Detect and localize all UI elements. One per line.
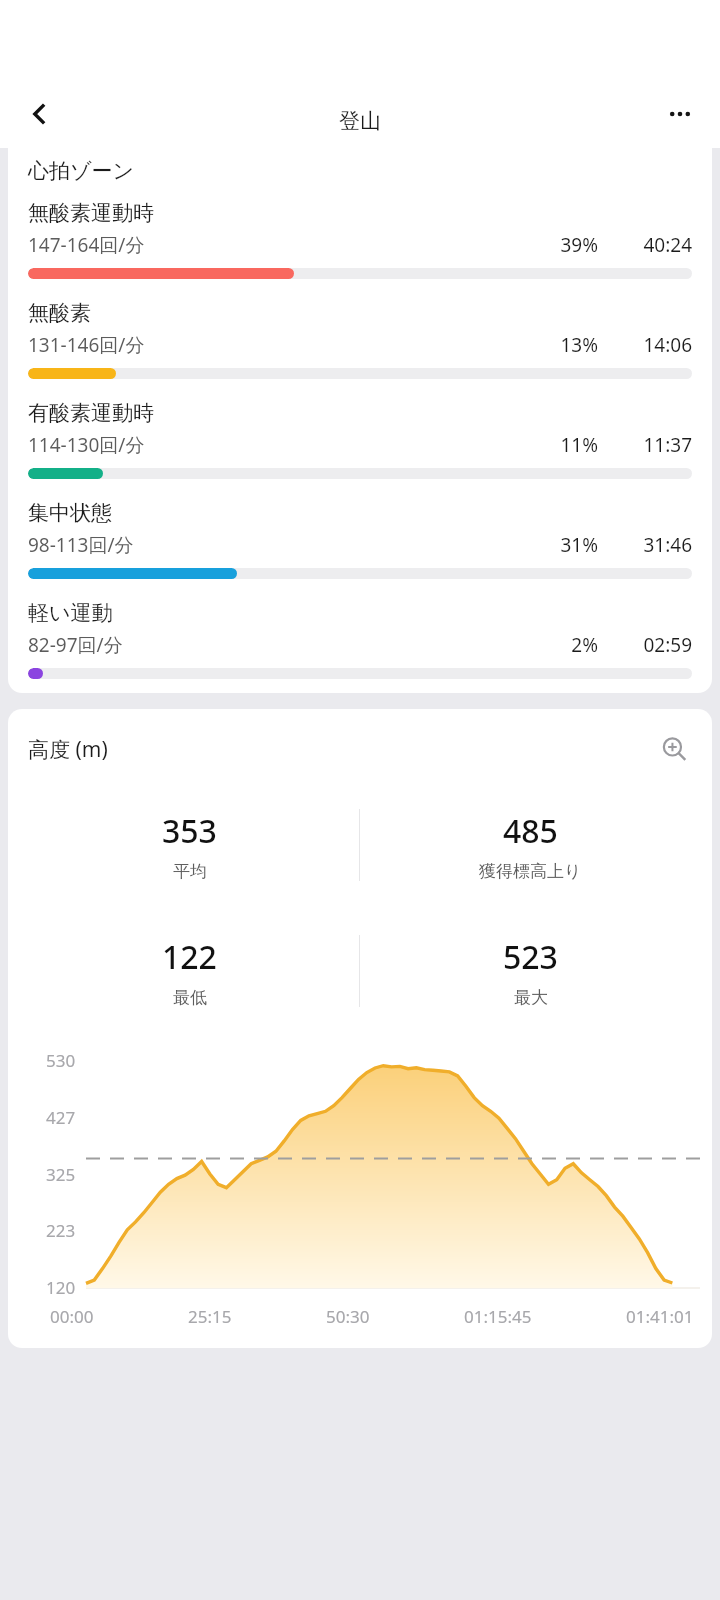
button[interactable]: 集中状態 bbox=[20, 500, 700, 579]
staticText: 25:15 bbox=[188, 1305, 232, 1328]
staticText: 2% bbox=[528, 632, 598, 658]
staticText: 122 bbox=[162, 935, 217, 979]
staticText: 120 bbox=[46, 1276, 76, 1299]
staticText: 02:59 bbox=[612, 632, 692, 658]
staticText: 獲得標高上り bbox=[479, 861, 582, 882]
staticText: 11:37 bbox=[612, 432, 692, 458]
button[interactable]: More options bbox=[654, 88, 706, 140]
staticText: 50:30 bbox=[326, 1305, 370, 1328]
staticText: 14:06 bbox=[612, 332, 692, 358]
staticText: 530 bbox=[46, 1049, 76, 1072]
staticText: 31:46 bbox=[612, 532, 692, 558]
staticText: 00:00 bbox=[50, 1305, 94, 1328]
staticText: 登山 bbox=[339, 108, 381, 134]
staticText: 98-113回/分 bbox=[28, 532, 134, 558]
button[interactable]: 無酸素 bbox=[20, 300, 700, 379]
staticText: 無酸素 bbox=[28, 300, 91, 326]
staticText: 軽い運動 bbox=[28, 600, 113, 626]
staticText: 82-97回/分 bbox=[28, 632, 123, 658]
staticText: 353 bbox=[162, 809, 217, 853]
staticText: 427 bbox=[46, 1106, 76, 1129]
staticText: 最低 bbox=[173, 987, 207, 1008]
staticText: 平均 bbox=[173, 861, 207, 882]
staticText: 最大 bbox=[514, 987, 548, 1008]
staticText: 13% bbox=[528, 332, 598, 358]
button[interactable]: 軽い運動 bbox=[20, 600, 700, 679]
staticText: 40:24 bbox=[612, 232, 692, 258]
staticText: 223 bbox=[46, 1219, 76, 1242]
staticText: 無酸素運動時 bbox=[28, 200, 154, 226]
staticText: 有酸素運動時 bbox=[28, 400, 154, 426]
staticText: 485 bbox=[503, 809, 558, 853]
staticText: 01:15:45 bbox=[464, 1305, 532, 1328]
staticText: 31% bbox=[528, 532, 598, 558]
button[interactable]: Zoom chart bbox=[654, 729, 694, 769]
button[interactable]: 無酸素運動時 bbox=[20, 200, 700, 279]
staticText: 523 bbox=[503, 935, 558, 979]
staticText: 集中状態 bbox=[28, 500, 112, 526]
staticText: 325 bbox=[46, 1163, 76, 1186]
staticText: 131-146回/分 bbox=[28, 332, 145, 358]
staticText: 高度 (m) bbox=[28, 735, 108, 764]
staticText: 147-164回/分 bbox=[28, 232, 145, 258]
staticText: 01:41:01 bbox=[626, 1305, 694, 1328]
staticText: 114-130回/分 bbox=[28, 432, 145, 458]
staticText: 39% bbox=[528, 232, 598, 258]
staticText: 11% bbox=[528, 432, 598, 458]
staticText: 心拍ゾーン bbox=[28, 158, 134, 184]
button[interactable]: 有酸素運動時 bbox=[20, 400, 700, 479]
button[interactable]: Back bbox=[14, 88, 66, 140]
